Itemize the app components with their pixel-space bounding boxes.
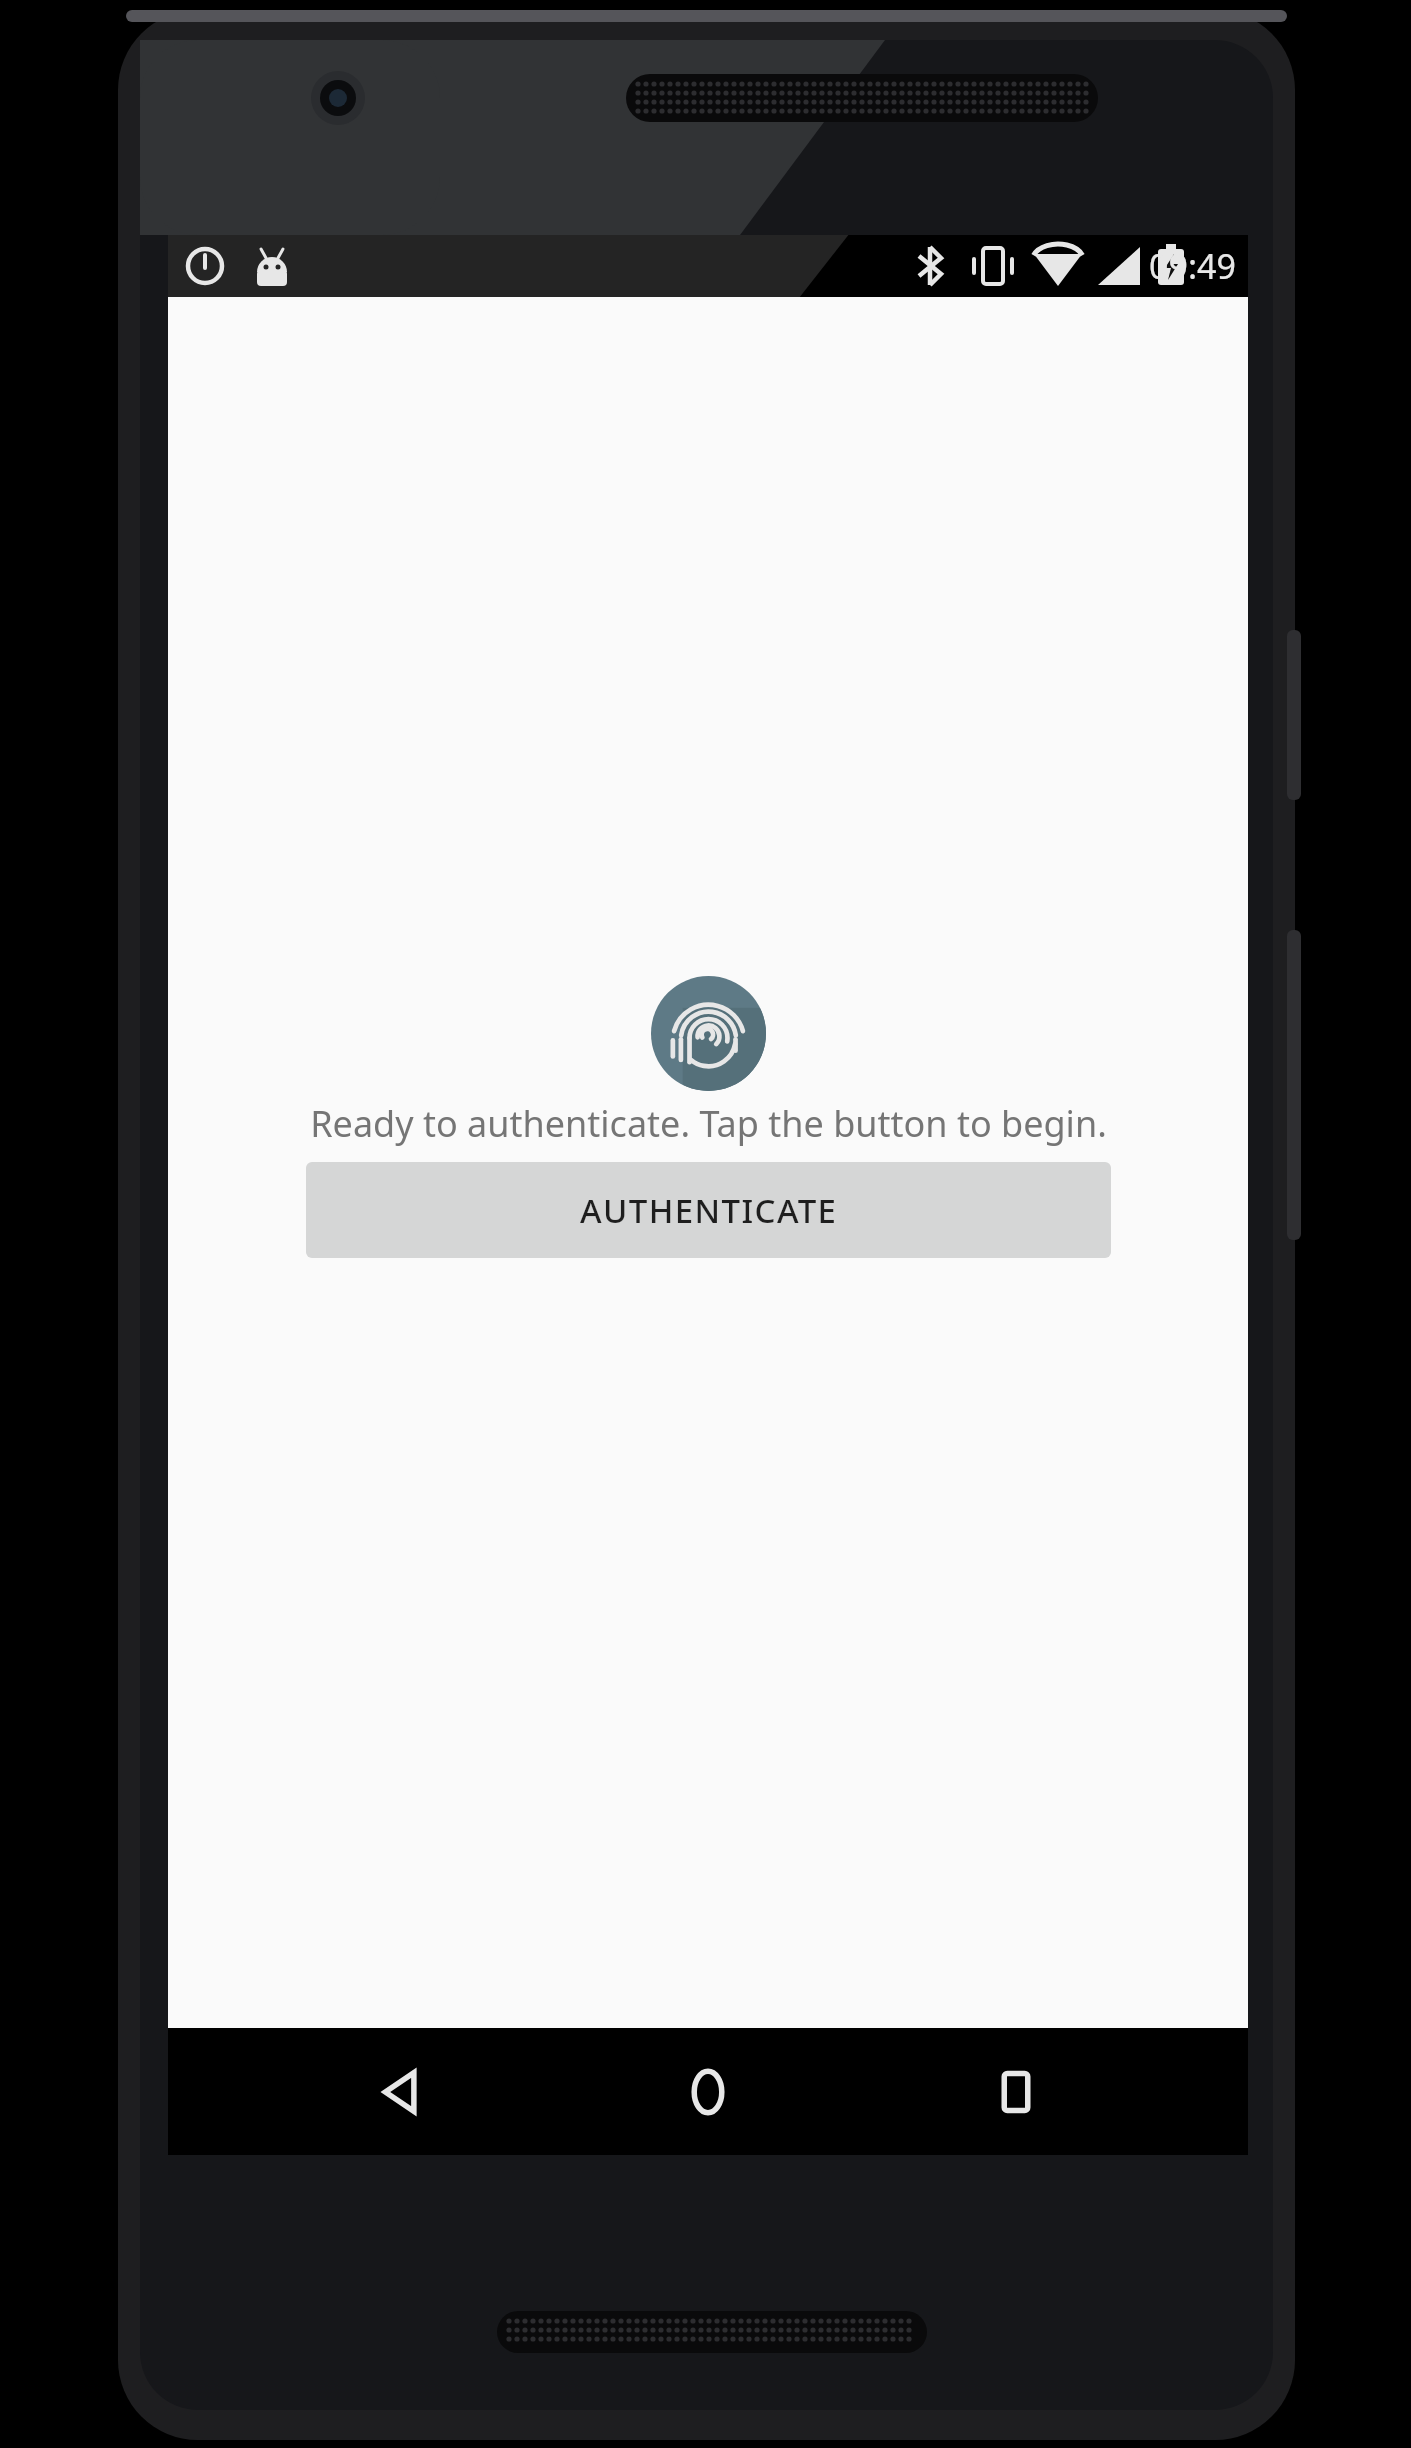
button[interactable]: Back xyxy=(326,2028,476,2155)
staticText: 09:49 xyxy=(1149,243,1236,289)
button[interactable]: Home xyxy=(633,2028,783,2155)
button[interactable]: AUTHENTICATE xyxy=(306,1162,1111,1258)
staticText: AUTHENTICATE xyxy=(580,1188,838,1233)
staticText: Ready to authenticate. Tap the button to… xyxy=(310,1099,1107,1148)
button[interactable]: Recent apps xyxy=(941,2028,1091,2155)
